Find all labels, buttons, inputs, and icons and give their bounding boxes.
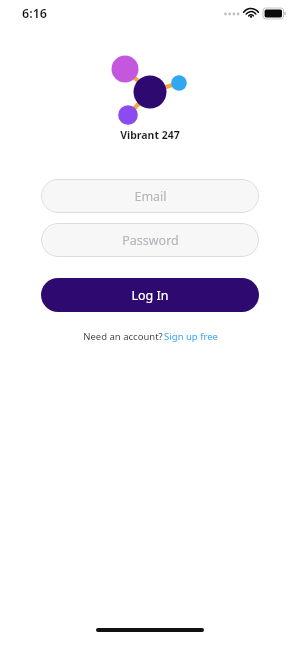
staticText: Need an account? bbox=[82, 330, 164, 343]
staticText: Vibrant 247 bbox=[120, 128, 180, 142]
staticText: Sign up free bbox=[164, 330, 218, 343]
staticText: Password bbox=[122, 232, 179, 249]
button[interactable]: Sign up free bbox=[164, 330, 218, 343]
staticText: 6:16 bbox=[22, 5, 47, 22]
button[interactable]: Password bbox=[41, 223, 259, 257]
button[interactable]: Log In bbox=[41, 278, 259, 312]
button[interactable]: Email bbox=[41, 179, 259, 213]
staticText: Email bbox=[134, 188, 167, 205]
staticText: Log In bbox=[131, 287, 169, 304]
